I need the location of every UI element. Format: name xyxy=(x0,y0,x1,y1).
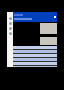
button[interactable]: Nav item xyxy=(9,22,12,25)
button[interactable]: Nav item xyxy=(9,27,12,30)
button[interactable]: Nav item xyxy=(9,32,12,35)
button[interactable]: Nav item xyxy=(9,17,12,20)
